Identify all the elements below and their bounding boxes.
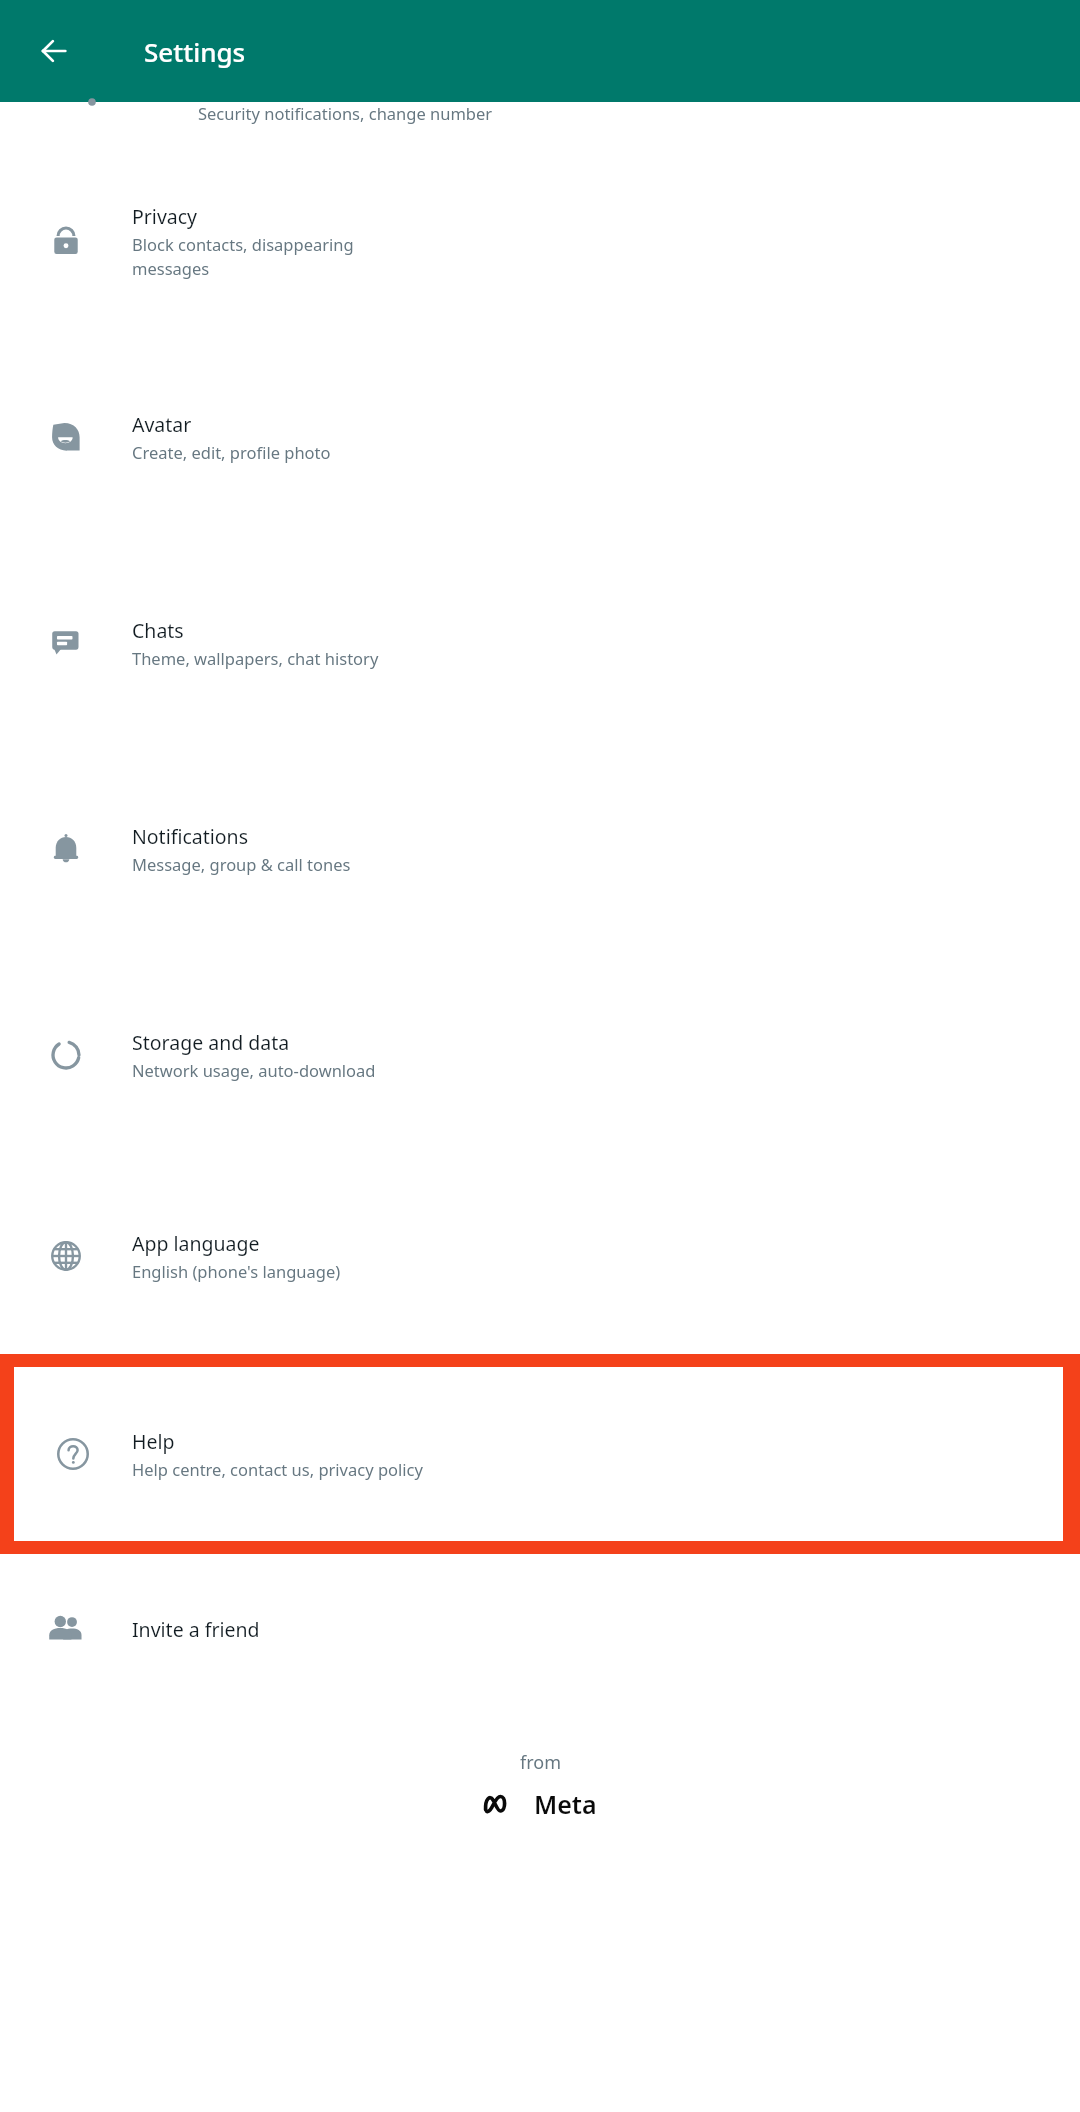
staticText: Meta [534, 1787, 597, 1821]
staticText: Network usage, auto-download [132, 1059, 376, 1081]
staticText: Security notifications, change number [198, 102, 493, 124]
staticText: Privacy [132, 203, 198, 230]
staticText: Help centre, contact us, privacy policy [132, 1458, 423, 1480]
button[interactable]: App language [0, 1158, 1080, 1354]
button[interactable]: Privacy [0, 148, 1080, 334]
staticText: English (phone's language) [132, 1260, 341, 1282]
button[interactable]: Storage and data [0, 952, 1080, 1158]
staticText: Block contacts, disappearing messages [132, 233, 354, 280]
button[interactable]: Avatar [0, 334, 1080, 540]
staticText: Theme, wallpapers, chat history [132, 647, 379, 669]
button[interactable]: Back [22, 19, 86, 83]
staticText: App language [132, 1230, 260, 1257]
button[interactable]: Chats [0, 540, 1080, 746]
staticText: Notifications [132, 823, 248, 850]
staticText: Message, group & call tones [132, 853, 351, 875]
staticText: Chats [132, 617, 184, 644]
button[interactable]: Notifications [0, 746, 1080, 952]
button[interactable]: Help [14, 1367, 1063, 1541]
staticText: Invite a friend [132, 1616, 260, 1643]
button[interactable]: Invite a friend [0, 1554, 1080, 1704]
staticText: from [520, 1750, 561, 1775]
staticText: Storage and data [132, 1029, 290, 1056]
staticText: Create, edit, profile photo [132, 441, 331, 463]
staticText: Settings [144, 34, 246, 69]
staticText: Avatar [132, 411, 192, 438]
staticText: Help [132, 1428, 175, 1455]
